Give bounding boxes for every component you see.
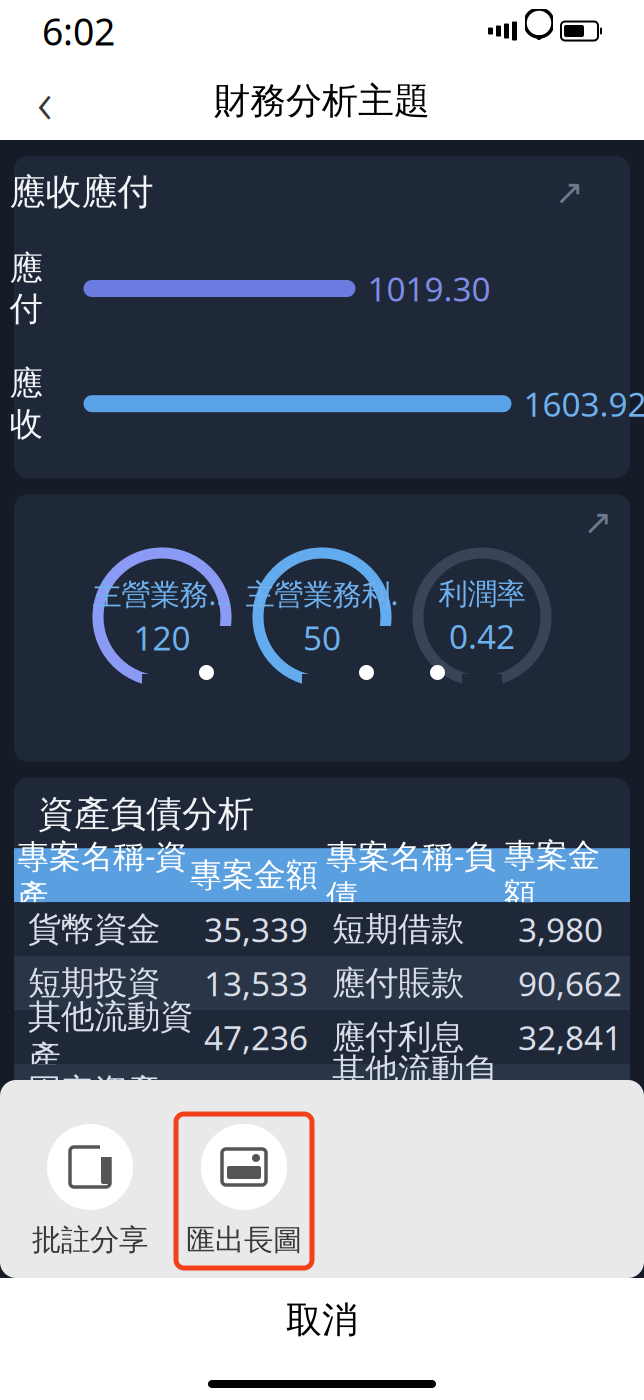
staticText: 主營業務… — [92, 574, 231, 613]
staticText: 專案金額 — [504, 836, 600, 914]
staticText: 47,236 — [204, 1015, 308, 1059]
staticText: 其他流動資產 — [28, 996, 193, 1078]
staticText: 資產負債分析 — [38, 792, 254, 836]
staticText: 專案金額 — [190, 856, 318, 895]
staticText: 應付 — [9, 248, 42, 329]
staticText: 專案名稱-負債 — [326, 834, 496, 916]
button[interactable]: 批註分享 — [22, 1114, 158, 1268]
staticText: 專案名稱-資產 — [17, 834, 187, 916]
staticText: 應收應付 — [9, 170, 153, 214]
staticText: 利潤率 — [438, 576, 525, 612]
staticText: 財務分析主題 — [214, 79, 430, 123]
staticText: 應付賬款 — [332, 963, 464, 1004]
staticText: 主營業務利. — [245, 574, 398, 613]
staticText: 32,841 — [518, 1015, 622, 1059]
staticText: 71,059 — [518, 1069, 622, 1113]
staticText: 應付利息 — [332, 1017, 464, 1058]
staticText: ↗ — [555, 172, 584, 212]
staticText: 13,533 — [204, 961, 308, 1005]
button[interactable]: Expand chart — [578, 502, 618, 542]
staticText: 1019.30 — [367, 266, 490, 311]
staticText: 0.42 — [449, 614, 515, 658]
staticText: 1603.92 — [523, 382, 644, 426]
staticText: 其他流動負債 — [332, 1050, 497, 1132]
staticText: 28,528 — [204, 1069, 308, 1113]
staticText: 120 — [133, 615, 190, 660]
staticText: 3,980 — [518, 907, 603, 951]
staticText: 35,339 — [204, 907, 308, 951]
staticText: ↗ — [583, 502, 612, 542]
staticText: 短期投資 — [28, 963, 160, 1004]
staticText: 批註分享 — [32, 1222, 148, 1258]
staticText: 短期借款 — [332, 909, 464, 950]
staticText: 固定資產 — [28, 1071, 160, 1112]
staticText: 貨幣資金 — [28, 909, 160, 950]
button[interactable]: Expand chart — [549, 172, 589, 212]
button[interactable]: Back — [12, 68, 78, 134]
staticText: 應收 — [9, 363, 42, 445]
staticText: 90,662 — [518, 961, 622, 1005]
staticText: 取消 — [286, 1298, 358, 1342]
staticText: ‹ — [37, 62, 53, 140]
button[interactable]: 取消 — [0, 1278, 644, 1362]
staticText: 50 — [303, 615, 341, 660]
staticText: 6:02 — [42, 6, 115, 56]
button[interactable]: 匯出長圖 — [176, 1114, 312, 1268]
staticText: 匯出長圖 — [186, 1222, 302, 1258]
